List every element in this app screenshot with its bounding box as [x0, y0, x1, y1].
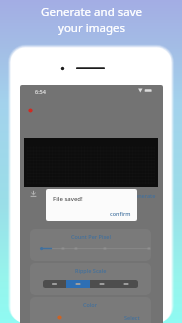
- staticText: Color: [83, 301, 98, 308]
- button[interactable]: Slider: [30, 246, 151, 256]
- staticText: 6:54: [35, 88, 46, 95]
- button[interactable]: confirm: [108, 209, 133, 218]
- staticText: confirm: [110, 210, 131, 217]
- button[interactable]: Color: [30, 297, 151, 323]
- staticText: Generate: [131, 192, 156, 199]
- staticText: Generate and save: [41, 4, 142, 20]
- button[interactable]: Ripple Scale: [30, 263, 151, 295]
- staticText: Select: [124, 314, 140, 321]
- staticText: Ripple Scale: [75, 267, 107, 274]
- button[interactable]: Save image: [29, 189, 38, 198]
- button[interactable]: Count Per Pixel: [30, 229, 151, 261]
- button[interactable]: Option 3: [90, 280, 114, 288]
- staticText: your images: [58, 20, 125, 36]
- button[interactable]: Option 1: [43, 280, 66, 288]
- staticText: File saved!: [53, 195, 83, 203]
- button[interactable]: Option 4: [114, 280, 138, 288]
- button[interactable]: Select: [121, 312, 143, 323]
- button[interactable]: Generate: [128, 190, 159, 201]
- button[interactable]: Current colour: [55, 313, 64, 322]
- button[interactable]: Option 2: [66, 280, 90, 288]
- button[interactable]: Record: [26, 106, 35, 115]
- staticText: Count Per Pixel: [71, 233, 111, 240]
